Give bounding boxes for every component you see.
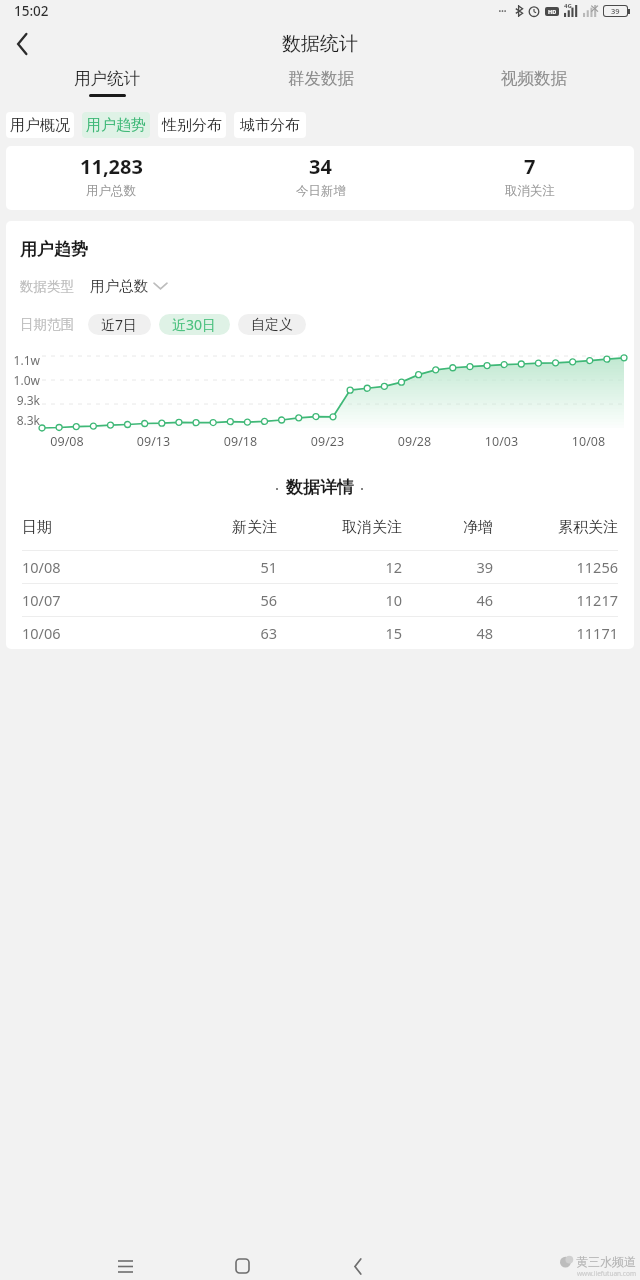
- staticText: 今日新增: [296, 183, 346, 199]
- staticText: 近30日: [172, 315, 217, 334]
- staticText: 15:02: [14, 2, 49, 20]
- staticText: 净增: [402, 518, 493, 537]
- staticText: 34: [309, 153, 332, 180]
- button[interactable]: 7: [425, 153, 634, 199]
- staticText: 09/28: [371, 433, 458, 450]
- staticText: 8.3k: [6, 412, 40, 428]
- staticText: 用户统计: [74, 68, 140, 89]
- button[interactable]: 用户统计: [0, 65, 214, 98]
- staticText: 63: [163, 623, 277, 643]
- staticText: 4G: [564, 2, 572, 10]
- staticText: 11217: [493, 590, 618, 610]
- button[interactable]: 用户概况: [6, 112, 74, 138]
- staticText: 数据类型: [20, 278, 74, 295]
- staticText: 性别分布: [162, 116, 222, 135]
- staticText: 09/13: [110, 433, 197, 450]
- staticText: 10/08: [22, 557, 163, 577]
- button[interactable]: Menu: [111, 1252, 139, 1280]
- staticText: 累积关注: [493, 518, 618, 537]
- button[interactable]: 性别分布: [158, 112, 226, 138]
- staticText: 用户总数: [90, 277, 148, 295]
- staticText: 39: [611, 6, 620, 16]
- staticText: 9.3k: [6, 392, 40, 408]
- staticText: 取消关注: [277, 518, 402, 537]
- staticText: 39: [402, 557, 493, 577]
- staticText: ·: [275, 478, 280, 498]
- staticText: 09/08: [24, 433, 110, 450]
- staticText: 48: [402, 623, 493, 643]
- staticText: 群发数据: [288, 68, 354, 89]
- staticText: 10/07: [22, 590, 163, 610]
- staticText: 用户趋势: [86, 116, 146, 135]
- staticText: 黄三水频道: [576, 1254, 636, 1269]
- button[interactable]: 11,283: [6, 153, 216, 199]
- staticText: 日期: [22, 518, 163, 537]
- staticText: 取消关注: [505, 183, 555, 199]
- staticText: 46: [402, 590, 493, 610]
- staticText: 10: [277, 590, 402, 610]
- button[interactable]: 自定义: [238, 314, 306, 335]
- staticText: 11171: [493, 623, 618, 643]
- staticText: 09/23: [284, 433, 371, 450]
- staticText: 用户概况: [10, 116, 70, 135]
- staticText: www.liefutuan.com: [577, 1269, 636, 1278]
- staticText: 用户趋势: [20, 239, 88, 260]
- button[interactable]: 10/07: [22, 584, 618, 616]
- button[interactable]: Back: [344, 1252, 372, 1280]
- staticText: 10/03: [458, 433, 545, 450]
- staticText: 日期范围: [20, 316, 74, 333]
- button[interactable]: 视频数据: [427, 65, 640, 98]
- button[interactable]: 城市分布: [234, 112, 306, 138]
- staticText: 近7日: [101, 315, 138, 334]
- staticText: ·: [360, 478, 365, 498]
- staticText: 自定义: [251, 316, 293, 334]
- staticText: 10/08: [545, 433, 632, 450]
- staticText: 15: [277, 623, 402, 643]
- staticText: 10/06: [22, 623, 163, 643]
- staticText: 11,283: [80, 153, 143, 180]
- staticText: 09/18: [197, 433, 284, 450]
- button[interactable]: 10/08: [22, 551, 618, 583]
- button[interactable]: 34: [216, 153, 425, 199]
- staticText: 城市分布: [240, 116, 300, 135]
- staticText: 1.0w: [6, 372, 40, 388]
- staticText: 12: [277, 557, 402, 577]
- button[interactable]: 群发数据: [214, 65, 427, 98]
- staticText: 51: [163, 557, 277, 577]
- button[interactable]: 近7日: [88, 314, 151, 335]
- staticText: 56: [163, 590, 277, 610]
- staticText: HD: [548, 8, 557, 15]
- staticText: 11256: [493, 557, 618, 577]
- button[interactable]: Back: [0, 22, 44, 65]
- staticText: 7: [524, 153, 536, 180]
- button[interactable]: Home: [228, 1252, 256, 1280]
- staticText: 1.1w: [6, 352, 40, 368]
- button[interactable]: 近30日: [159, 314, 230, 335]
- staticText: 新关注: [163, 518, 277, 537]
- staticText: 数据统计: [282, 32, 358, 56]
- button[interactable]: 用户趋势: [82, 112, 150, 138]
- staticText: 视频数据: [501, 68, 567, 89]
- staticText: 用户总数: [86, 183, 136, 199]
- button[interactable]: 10/06: [22, 617, 618, 649]
- staticText: 数据详情: [286, 477, 354, 498]
- button[interactable]: 数据类型: [20, 276, 167, 296]
